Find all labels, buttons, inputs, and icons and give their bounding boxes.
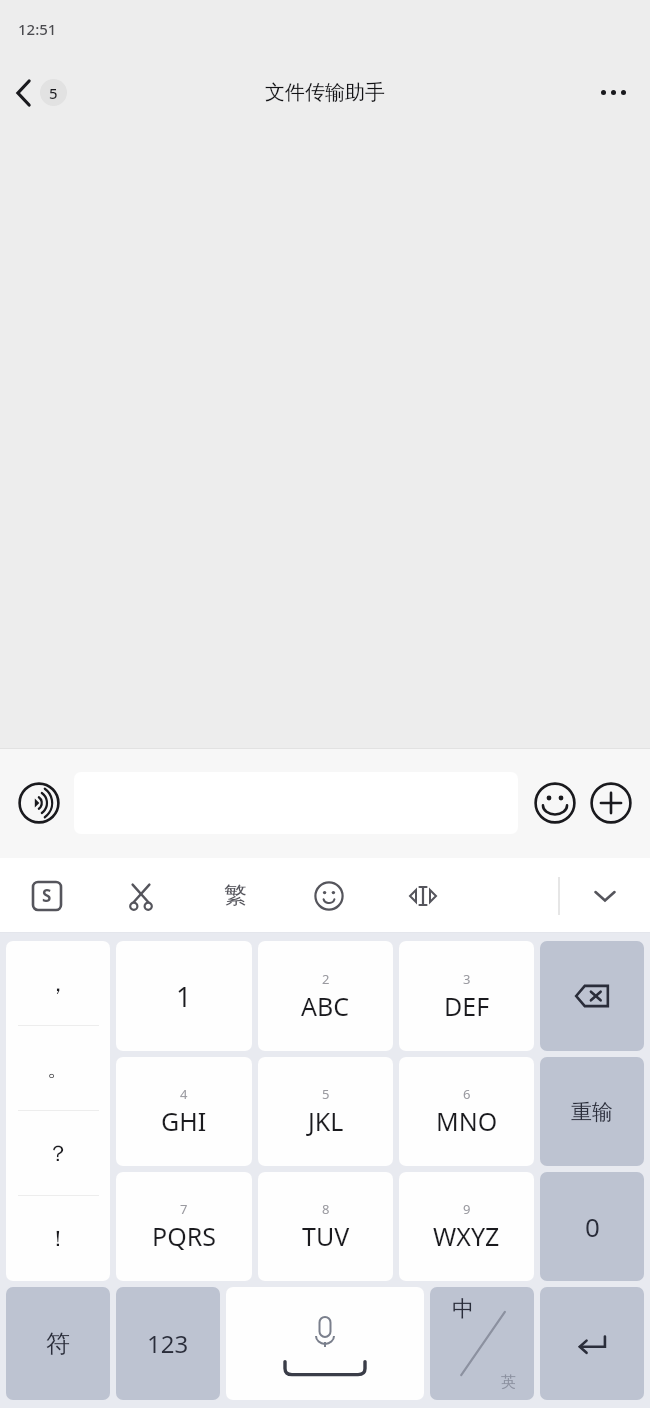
button[interactable]: 繁 xyxy=(188,858,282,933)
staticText: 2 xyxy=(322,970,330,988)
button[interactable]: 重输 xyxy=(540,1057,644,1166)
staticText: 6 xyxy=(463,1085,471,1103)
button[interactable]: Sogou input xyxy=(0,858,94,933)
staticText: 繁 xyxy=(224,881,247,910)
staticText: 。 xyxy=(47,1055,69,1083)
staticText: WXYZ xyxy=(433,1219,500,1253)
button[interactable]: 3 xyxy=(399,941,534,1051)
staticText: 5 xyxy=(49,83,58,103)
staticText: MNO xyxy=(436,1104,498,1138)
staticText: 8 xyxy=(322,1200,330,1218)
button[interactable]: Emoji panel xyxy=(282,858,376,933)
button[interactable]: More xyxy=(588,780,634,826)
button[interactable]: More options xyxy=(593,82,634,103)
button[interactable]: 5 xyxy=(258,1057,393,1166)
button[interactable]: Backspace xyxy=(540,941,644,1051)
button[interactable]: 0 xyxy=(540,1172,644,1281)
button[interactable]: Emoji xyxy=(532,780,578,826)
button[interactable]: 4 xyxy=(116,1057,252,1166)
staticText: 0 xyxy=(585,1209,600,1244)
staticText: 12:51 xyxy=(18,19,57,39)
staticText: 7 xyxy=(180,1200,188,1218)
button[interactable]: Back xyxy=(10,75,73,110)
staticText: ？ xyxy=(47,1140,69,1168)
staticText: 3 xyxy=(463,970,471,988)
button[interactable]: Move cursor xyxy=(376,858,470,933)
button[interactable]: Space xyxy=(226,1287,424,1400)
staticText: S xyxy=(42,884,52,907)
button[interactable]: Chinese English toggle xyxy=(430,1287,534,1400)
staticText: 4 xyxy=(180,1085,188,1103)
staticText: DEF xyxy=(444,989,490,1023)
button[interactable]: 8 xyxy=(258,1172,393,1281)
button[interactable]: ？ xyxy=(6,1111,110,1196)
staticText: ， xyxy=(47,970,69,998)
staticText: 重输 xyxy=(571,1099,613,1125)
staticText: 文件传输助手 xyxy=(265,80,385,105)
button[interactable]: ！ xyxy=(6,1196,110,1281)
button[interactable]: 。 xyxy=(6,1026,110,1111)
staticText: 9 xyxy=(463,1200,471,1218)
staticText: PQRS xyxy=(152,1219,216,1253)
button[interactable]: Enter xyxy=(540,1287,644,1400)
button[interactable]: 6 xyxy=(399,1057,534,1166)
staticText: 中 xyxy=(452,1295,474,1323)
staticText: ABC xyxy=(301,989,350,1023)
button[interactable]: 符 xyxy=(6,1287,110,1400)
button[interactable]: ， xyxy=(6,941,110,1026)
staticText: 123 xyxy=(147,1327,189,1360)
staticText: ！ xyxy=(47,1225,69,1253)
button[interactable]: Voice input xyxy=(16,780,62,826)
staticText: 5 xyxy=(322,1085,330,1103)
staticText: 1 xyxy=(176,978,192,1015)
button[interactable]: 2 xyxy=(258,941,393,1051)
button[interactable]: Cut xyxy=(94,858,188,933)
button[interactable]: Hide keyboard xyxy=(560,858,650,933)
staticText: 英 xyxy=(501,1373,516,1392)
staticText: TUV xyxy=(302,1219,350,1253)
button[interactable]: 7 xyxy=(116,1172,252,1281)
staticText: 符 xyxy=(46,1329,70,1359)
button[interactable]: 123 xyxy=(116,1287,220,1400)
staticText: JKL xyxy=(308,1104,344,1138)
button[interactable]: 1 xyxy=(116,941,252,1051)
staticText: GHI xyxy=(161,1104,207,1138)
button[interactable]: 9 xyxy=(399,1172,534,1281)
